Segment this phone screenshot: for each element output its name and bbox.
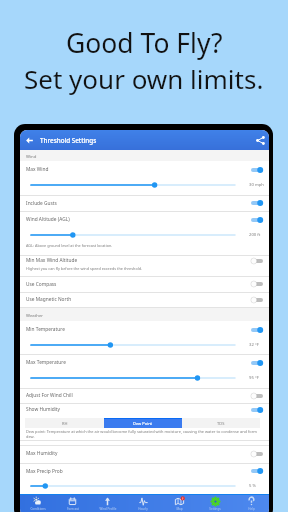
- staticText: TDS: [217, 421, 225, 426]
- staticText: Wind: [26, 153, 37, 159]
- button[interactable]: RH: [25, 418, 104, 428]
- staticText: Threshold Settings: [40, 136, 97, 145]
- button[interactable]: Max Temperature: [250, 354, 264, 371]
- staticText: Use Compass: [26, 281, 57, 288]
- staticText: Show Humidity: [26, 406, 61, 413]
- staticText: Good To Fly?: [66, 25, 223, 61]
- button[interactable]: Show Humidity: [250, 403, 264, 416]
- button[interactable]: Show Humidity: [20, 403, 269, 416]
- staticText: Forecast: [67, 507, 79, 511]
- staticText: Min Max Wind Altitude: [26, 257, 78, 264]
- button[interactable]: Map: [161, 495, 197, 512]
- button[interactable]: Adjust For Wind Chill: [20, 388, 269, 403]
- staticText: Conditions: [30, 507, 46, 511]
- button[interactable]: Include Gusts: [250, 195, 264, 211]
- button[interactable]: Forecast: [55, 495, 90, 512]
- staticText: Hourly: [138, 507, 148, 511]
- staticText: Dew Point: [133, 421, 153, 426]
- staticText: Set your own limits.: [24, 61, 264, 96]
- button[interactable]: Adjust For Wind Chill: [250, 388, 264, 403]
- button[interactable]: Min Max Wind Altitude: [20, 255, 269, 266]
- button[interactable]: Include Gusts: [20, 195, 269, 211]
- staticText: Map: [176, 507, 183, 511]
- staticText: 32 °F: [249, 342, 259, 348]
- staticText: 200 ft: [249, 232, 261, 238]
- button[interactable]: Settings: [197, 495, 233, 512]
- staticText: Use Magnetic North: [26, 296, 72, 303]
- staticText: RH: [62, 421, 68, 426]
- staticText: 95 °F: [249, 375, 259, 381]
- staticText: Adjust For Wind Chill: [26, 392, 73, 399]
- button[interactable]: Max Humidity: [20, 445, 269, 462]
- staticText: Help: [248, 507, 255, 511]
- staticText: Max Wind: [26, 166, 49, 173]
- button[interactable]: Conditions: [20, 495, 55, 512]
- button[interactable]: Wind Altitude (AGL): [250, 211, 264, 228]
- button[interactable]: Wind Profile: [90, 495, 125, 512]
- staticText: Weather: [26, 312, 44, 318]
- button[interactable]: Hourly: [125, 495, 161, 512]
- staticText: Min Temperature: [26, 326, 65, 333]
- button[interactable]: Share: [252, 130, 268, 150]
- staticText: Highest you can fly before the wind spee…: [26, 266, 143, 271]
- button[interactable]: Min Temperature: [20, 321, 269, 338]
- button[interactable]: Min Temperature: [250, 321, 264, 338]
- button[interactable]: Wind Altitude (AGL): [20, 211, 269, 228]
- button[interactable]: Max Precip Prob: [20, 463, 269, 479]
- staticText: Max Precip Prob: [26, 468, 63, 475]
- staticText: Wind Profile: [99, 507, 117, 511]
- staticText: Dew point: Temperature at which the air …: [26, 429, 260, 439]
- button[interactable]: Min Max Wind Altitude: [250, 255, 264, 266]
- button[interactable]: Use Magnetic North: [20, 292, 269, 307]
- button[interactable]: Use Magnetic North: [250, 292, 264, 307]
- button[interactable]: Back: [21, 130, 37, 150]
- button[interactable]: Use Compass: [20, 276, 269, 292]
- staticText: 30 mph: [249, 182, 264, 188]
- staticText: Include Gusts: [26, 200, 57, 207]
- staticText: AGL: Above ground level at the forecast …: [26, 243, 113, 248]
- button[interactable]: Use Compass: [250, 276, 264, 292]
- staticText: Max Temperature: [26, 359, 66, 366]
- staticText: 5 %: [249, 483, 256, 489]
- staticText: Max Humidity: [26, 450, 58, 457]
- button[interactable]: Max Wind: [250, 161, 264, 178]
- button[interactable]: Max Temperature: [20, 354, 269, 371]
- button[interactable]: TDS: [182, 418, 260, 428]
- staticText: Settings: [209, 507, 221, 511]
- button[interactable]: Max Wind: [20, 161, 269, 178]
- staticText: Wind Altitude (AGL): [26, 216, 70, 223]
- button[interactable]: Max Humidity: [250, 445, 264, 462]
- button[interactable]: Dew Point: [104, 418, 182, 428]
- button[interactable]: Help: [233, 495, 269, 512]
- button[interactable]: Max Precip Prob: [250, 463, 264, 479]
